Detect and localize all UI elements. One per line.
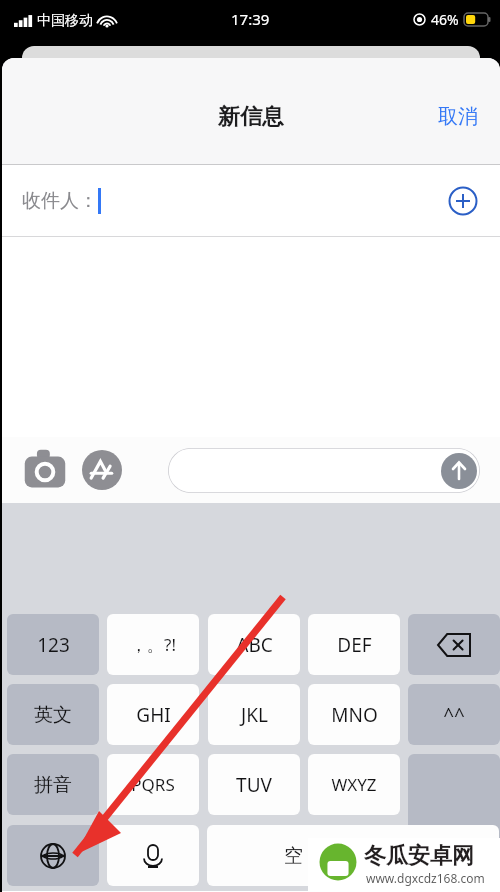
staticText: 123	[37, 632, 70, 658]
staticText: www.dgxcdz168.com	[366, 870, 485, 886]
staticText: 拼音	[34, 773, 72, 797]
button[interactable]: Switch keyboard	[7, 825, 99, 886]
button[interactable]: Send	[168, 448, 480, 493]
staticText: 46%	[431, 10, 459, 29]
button[interactable]: MNO	[308, 684, 400, 745]
staticText: 新信息	[218, 103, 284, 131]
button[interactable]: 拼音	[7, 754, 99, 815]
staticText: WXYZ	[331, 773, 377, 796]
button[interactable]: Send	[441, 453, 477, 489]
button[interactable]: WXYZ	[308, 754, 400, 815]
button[interactable]: Add contact	[448, 186, 478, 216]
button[interactable]: PQRS	[107, 754, 199, 815]
button[interactable]: 123	[7, 614, 99, 675]
button[interactable]: JKL	[208, 684, 300, 745]
staticText: MNO	[331, 702, 378, 728]
button[interactable]: ，。?!	[107, 614, 199, 675]
staticText: JKL	[241, 702, 268, 728]
staticText: 17:39	[231, 9, 270, 29]
button[interactable]: TUV	[208, 754, 300, 815]
staticText: 英文	[34, 703, 72, 727]
staticText: PQRS	[131, 773, 175, 796]
button[interactable]: 英文	[7, 684, 99, 745]
staticText: 空	[284, 844, 303, 868]
staticText: ^^	[443, 702, 465, 728]
staticText: 收件人：	[22, 189, 98, 213]
button[interactable]: 取消	[416, 96, 500, 137]
button[interactable]: 空	[207, 825, 499, 886]
staticText: 取消	[438, 104, 478, 129]
staticText: 换行	[435, 850, 473, 874]
staticText: 冬瓜安卓网	[364, 842, 474, 870]
button[interactable]: Camera	[22, 447, 68, 493]
button[interactable]: Delete	[408, 614, 500, 675]
button[interactable]: 换行	[408, 754, 500, 886]
button[interactable]: ABC	[208, 614, 300, 675]
button[interactable]: Dictate	[107, 825, 199, 886]
staticText: ，。?!	[130, 633, 176, 656]
staticText: GHI	[136, 702, 171, 728]
staticText: 中国移动	[37, 12, 93, 30]
button[interactable]: App Store	[82, 450, 122, 490]
button[interactable]: DEF	[308, 614, 400, 675]
staticText: TUV	[236, 772, 272, 798]
staticText: DEF	[337, 632, 372, 658]
button[interactable]: ^^	[408, 684, 500, 745]
button[interactable]: 收件人：	[2, 165, 500, 237]
staticText: ABC	[236, 632, 273, 658]
button[interactable]: GHI	[107, 684, 199, 745]
